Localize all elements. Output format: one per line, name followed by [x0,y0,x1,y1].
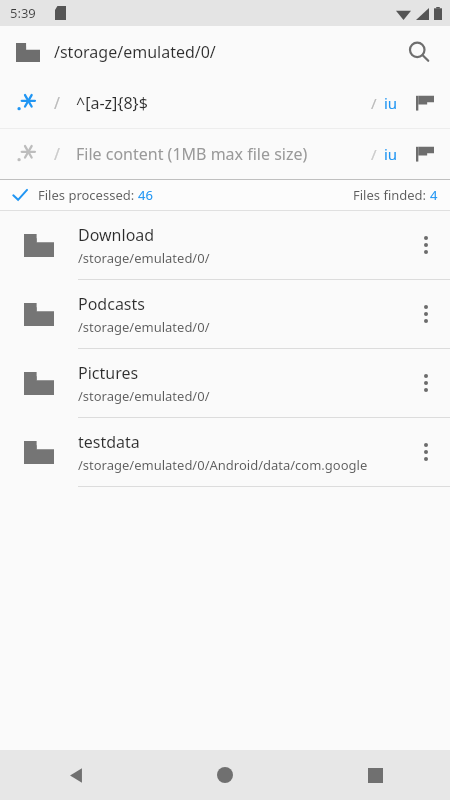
staticText: / [54,92,60,114]
staticText: iu [384,93,398,113]
staticText: /storage/emulated/0/ [78,249,210,267]
button[interactable]: Search [402,35,436,69]
button[interactable]: Folder [14,38,42,66]
staticText: /storage/emulated/0/Android/data/com.goo… [78,456,368,474]
staticText: Pictures [78,362,139,384]
staticText: 46 [138,186,153,204]
button[interactable]: Podcasts [0,280,450,349]
staticText: Files finded: [353,186,430,204]
staticText: /storage/emulated/0/ [78,318,210,336]
staticText: 4 [430,186,438,204]
other: Regex toggle [12,88,42,118]
staticText: 5:39 [10,4,36,22]
staticText: /storage/emulated/0/ [54,41,216,63]
staticText: testdata [78,431,140,453]
button[interactable]: Recent apps [300,750,450,800]
staticText: Podcasts [78,293,145,315]
button[interactable]: testdata [0,418,450,487]
staticText: File content (1MB max file size) [76,143,371,165]
staticText: /storage/emulated/0/ [78,387,210,405]
staticText: / [54,143,60,165]
button[interactable]: More options [402,418,450,486]
staticText: Download [78,224,155,246]
button[interactable]: More options [402,280,450,348]
button[interactable]: Pictures [0,349,450,418]
button[interactable]: Regex toggle [0,78,450,128]
button[interactable]: More options [402,349,450,417]
button[interactable]: Flag options [412,90,438,116]
staticText: ^[a-z]{8}$ [76,92,371,114]
staticText: / [371,93,377,113]
button[interactable]: Download [0,211,450,280]
button[interactable]: Home [150,750,300,800]
button[interactable]: Regex toggle [0,129,450,179]
staticText: Files processed: [38,186,138,204]
staticText: / [371,144,377,164]
button[interactable]: More options [402,211,450,279]
other: Regex toggle [12,139,42,169]
staticText: iu [384,144,398,164]
button[interactable]: Flag options [412,141,438,167]
button[interactable]: Back [0,750,150,800]
